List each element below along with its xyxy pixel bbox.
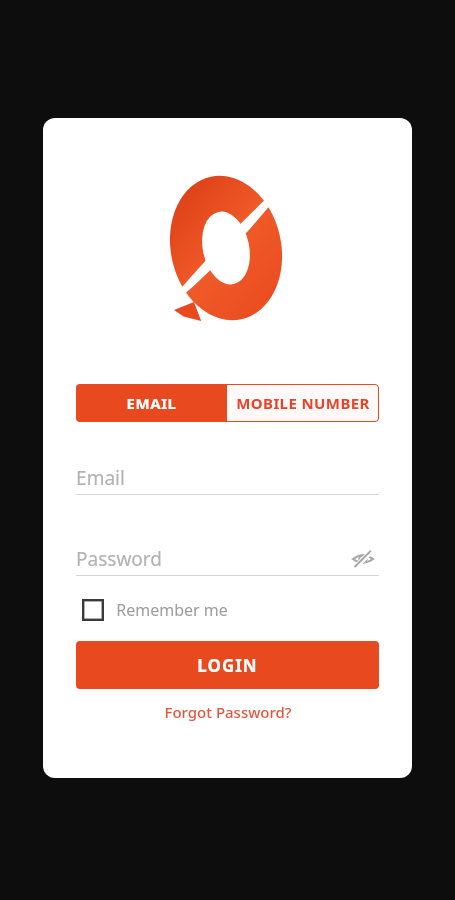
button[interactable]: Password xyxy=(76,543,379,575)
button[interactable]: Email xyxy=(76,462,379,495)
button[interactable]: Show password xyxy=(347,543,379,575)
staticText: Email xyxy=(76,465,125,491)
staticText: Remember me xyxy=(116,599,228,621)
button[interactable]: LOGIN xyxy=(76,641,379,689)
staticText: LOGIN xyxy=(197,654,258,677)
staticText: MOBILE NUMBER xyxy=(236,393,370,413)
staticText: Forgot Password? xyxy=(164,702,292,722)
button[interactable]: Forgot Password? xyxy=(154,698,302,726)
staticText: EMAIL xyxy=(126,393,177,413)
button[interactable]: Remember me xyxy=(82,594,228,626)
staticText: Password xyxy=(76,546,162,572)
button[interactable]: EMAIL xyxy=(76,384,226,422)
button[interactable]: MOBILE NUMBER xyxy=(226,384,379,422)
